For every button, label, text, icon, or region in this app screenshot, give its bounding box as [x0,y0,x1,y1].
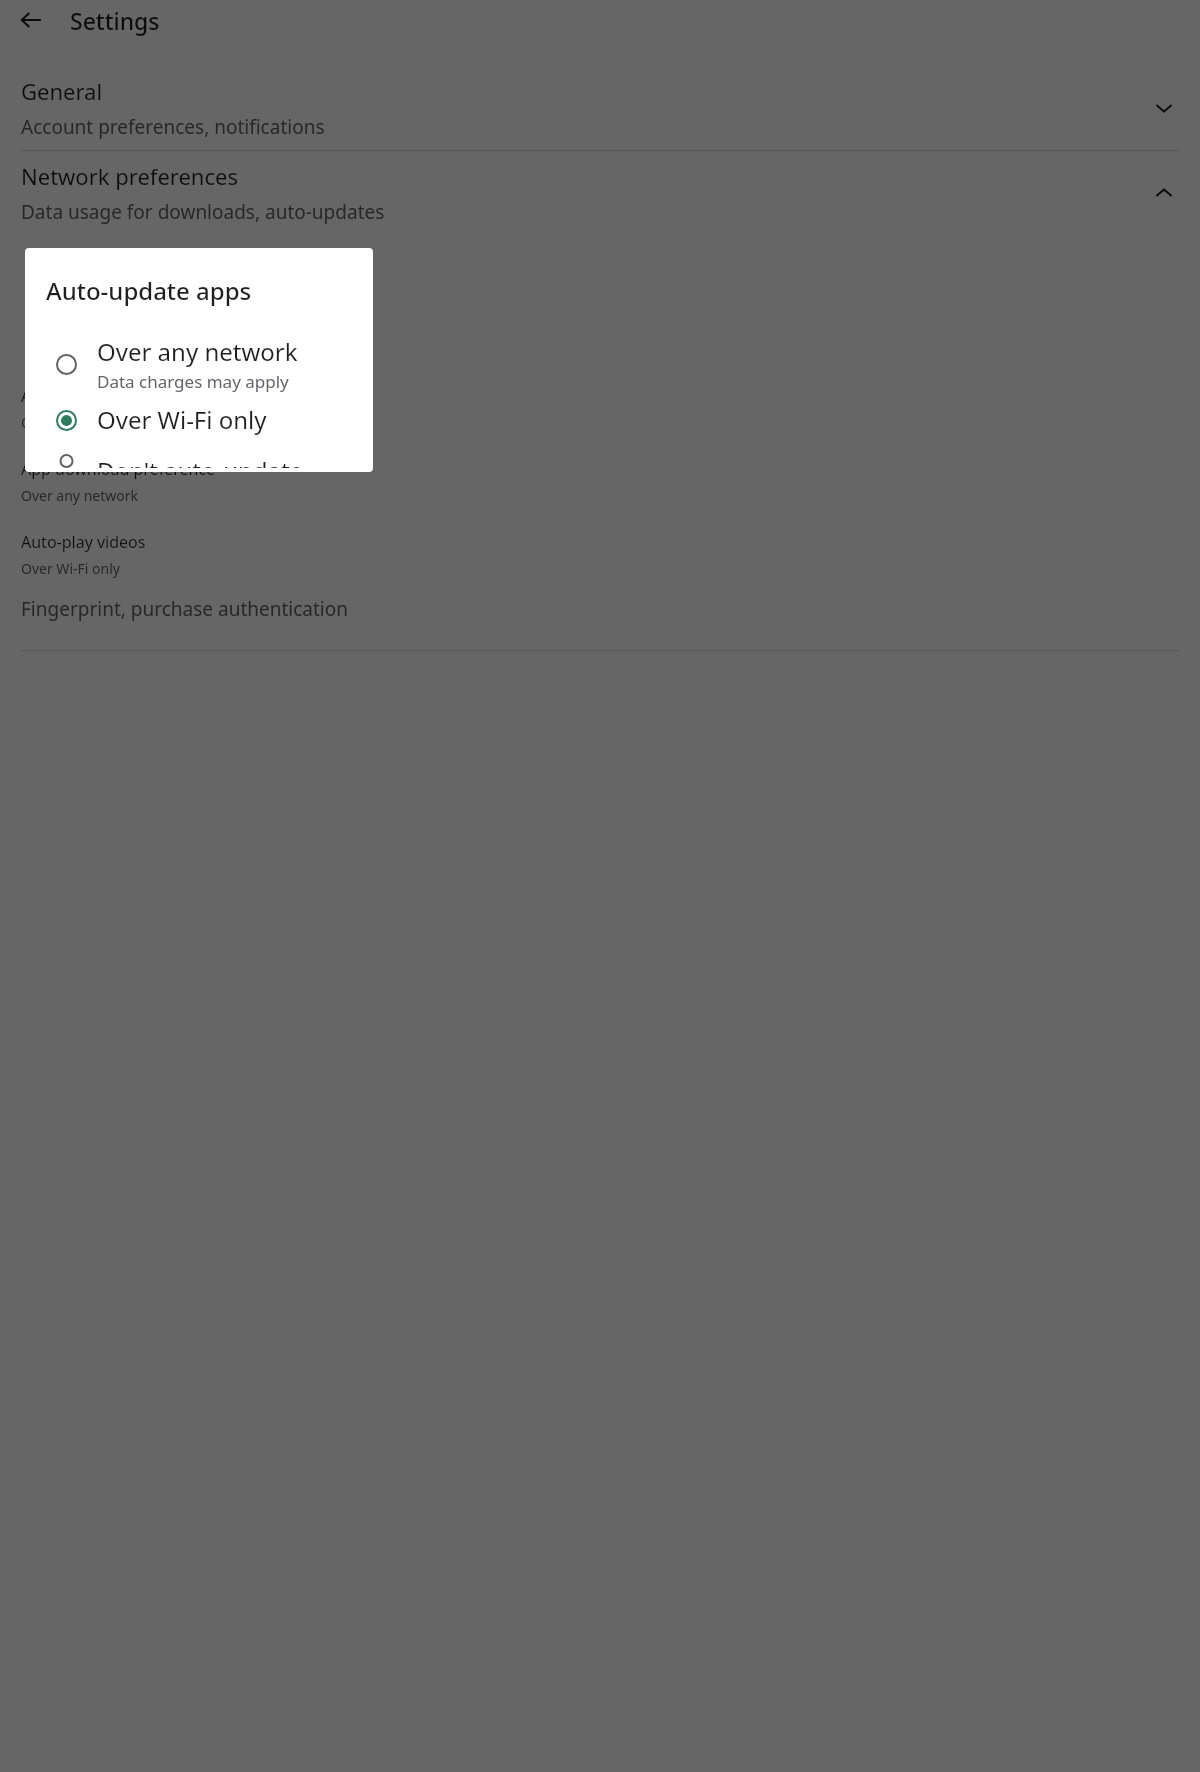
staticText: Data charges may apply [97,370,289,393]
button[interactable]: Don't auto-update apps [25,450,373,472]
staticText: Auto-update apps [46,274,252,307]
staticText: Over Wi-Fi only [21,559,120,578]
staticText: Over any network [21,486,138,505]
button[interactable]: General [0,66,1200,150]
staticText: Settings [70,5,160,36]
staticText: Network preferences [21,161,238,191]
staticText: Don't auto-update apps [97,454,357,468]
staticText: Over Wi-Fi only [97,403,267,436]
staticText: App download preference [21,458,216,480]
staticText: Account preferences, notifications [21,114,325,140]
staticText: Fingerprint, purchase authentication [21,596,348,622]
staticText: Auto-play videos [21,531,146,553]
staticText: Over any network [97,335,298,368]
button[interactable]: Network preferences [0,151,1200,235]
staticText: Auto-update apps [21,385,156,407]
staticText: Over Wi-Fi only [21,413,120,432]
button[interactable]: Over any network [25,331,373,397]
other: Collapse [1149,178,1179,208]
staticText: Data usage for downloads, auto-updates [21,199,385,225]
button[interactable]: Back [14,3,48,37]
staticText: General [21,76,103,106]
other: Expand [1149,93,1179,123]
button[interactable]: Over Wi-Fi only [25,399,373,440]
